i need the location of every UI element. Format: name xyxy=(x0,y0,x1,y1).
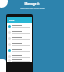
staticText: Inbox xyxy=(9,19,15,22)
button[interactable] xyxy=(7,29,32,35)
staticText: Organise your tasks easily xyxy=(20,7,45,10)
button[interactable] xyxy=(7,47,32,53)
button[interactable] xyxy=(7,53,32,59)
button[interactable] xyxy=(7,41,32,47)
button[interactable]: Inbox xyxy=(7,17,32,23)
button[interactable] xyxy=(7,59,32,62)
staticText: Manage it xyxy=(24,2,40,6)
button[interactable] xyxy=(7,35,32,41)
button[interactable] xyxy=(7,23,32,29)
